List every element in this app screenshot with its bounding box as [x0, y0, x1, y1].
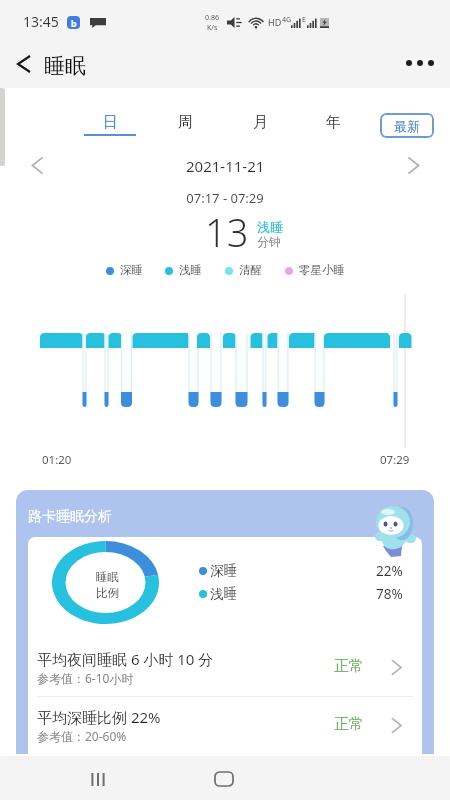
button[interactable]: Home [204, 759, 244, 799]
staticText: 浅睡 [179, 263, 202, 277]
staticText: 睡眠 [96, 570, 119, 584]
staticText: 浅睡 [210, 585, 237, 602]
button[interactable]: 月 [234, 112, 286, 148]
staticText: 13 [205, 206, 249, 258]
staticText: 参考值：6-10小时 [37, 670, 134, 686]
staticText: 日 [103, 113, 118, 132]
staticText: 月 [253, 113, 268, 132]
button[interactable]: Recent apps [78, 759, 118, 799]
button[interactable]: Previous day [24, 152, 50, 178]
button[interactable]: More options [400, 48, 440, 78]
staticText: 22% [376, 562, 403, 580]
staticText: 比例 [96, 586, 119, 600]
staticText: 年 [326, 113, 341, 132]
staticText: 平均深睡比例 22% [37, 707, 161, 727]
button[interactable]: 深睡 [199, 560, 422, 582]
button[interactable]: 最新 [380, 113, 434, 138]
button[interactable]: 周 [159, 112, 211, 148]
staticText: 睡眠 [44, 53, 86, 79]
button[interactable]: 平均深睡比例 22% [28, 696, 422, 754]
button[interactable]: 平均夜间睡眠 6 小时 10 分 [28, 638, 422, 696]
staticText: 0.86 [205, 13, 219, 23]
staticText: 4G [282, 15, 292, 25]
button[interactable]: 日 [84, 112, 136, 148]
staticText: b [71, 17, 77, 29]
staticText: 清醒 [239, 263, 262, 277]
staticText: K/s [207, 23, 218, 33]
staticText: 01:20 [42, 452, 72, 468]
staticText: 13:45 [23, 12, 59, 31]
staticText: 78% [376, 585, 403, 603]
staticText: 平均夜间睡眠 6 小时 10 分 [37, 649, 214, 669]
staticText: 2021-11-21 [186, 156, 265, 176]
staticText: 正常 [334, 657, 364, 676]
button[interactable]: 年 [307, 112, 359, 148]
button[interactable]: Next day [400, 152, 426, 178]
staticText: HD [268, 16, 282, 28]
staticText: 深睡 [120, 263, 143, 277]
staticText: 周 [178, 113, 193, 132]
staticText: 参考值：20-60% [37, 728, 127, 744]
staticText: 零星小睡 [299, 263, 345, 277]
staticText: 浅睡 [257, 219, 283, 235]
staticText: E [302, 15, 306, 25]
staticText: 深睡 [210, 562, 237, 579]
staticText: 正常 [334, 715, 364, 734]
staticText: 路卡睡眠分析 [28, 508, 112, 526]
staticText: 07:29 [380, 452, 410, 468]
staticText: 分钟 [257, 234, 281, 249]
staticText: 07:17 - 07:29 [0, 189, 450, 207]
staticText: 最新 [394, 118, 420, 134]
button[interactable]: 浅睡 [199, 583, 422, 605]
button[interactable]: Back [6, 46, 42, 82]
